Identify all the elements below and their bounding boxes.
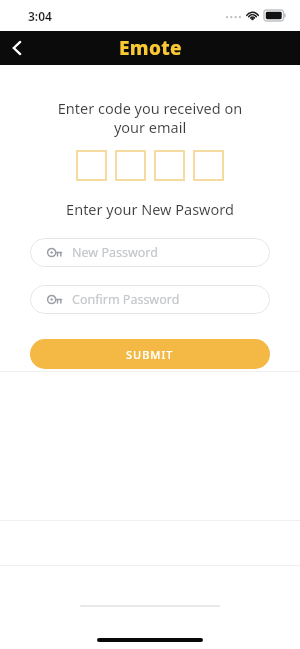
button[interactable]: Code digit 3 <box>154 150 185 181</box>
button[interactable]: Code digit 1 <box>76 150 107 181</box>
button[interactable]: Code digit 2 <box>115 150 146 181</box>
staticText: Emote <box>119 35 182 61</box>
button[interactable]: SUBMIT <box>30 339 270 369</box>
button[interactable]: Code digit 4 <box>193 150 224 181</box>
button[interactable]: Confirm Password <box>30 285 270 314</box>
staticText: Enter your New Pasword <box>0 199 300 219</box>
staticText: Enter code you received on your email <box>26 98 274 137</box>
staticText: Confirm Password <box>72 291 180 308</box>
button[interactable]: Back <box>0 31 34 65</box>
staticText: 3:04 <box>28 8 52 24</box>
button[interactable]: New Password <box>30 238 270 267</box>
staticText: SUBMIT <box>126 347 174 362</box>
staticText: New Password <box>72 244 158 261</box>
